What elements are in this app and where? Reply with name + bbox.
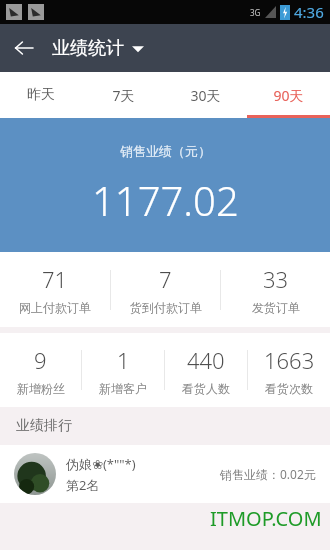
staticText: 网上付款订单 [19,300,91,315]
button[interactable]: 伪娘❀(*""*) [0,445,330,503]
staticText: 90天 [273,86,304,105]
button[interactable]: 7 [111,252,220,327]
button[interactable]: 1663 [248,333,330,407]
button[interactable]: 71 [0,252,110,327]
staticText: 货到付款订单 [130,300,202,315]
staticText: 30天 [190,86,221,105]
staticText: 33 [263,264,289,294]
staticText: 业绩排行 [16,417,72,435]
staticText: 新增粉丝 [17,381,65,395]
staticText: 销售业绩（元） [120,143,211,159]
staticText: 业绩统计 [52,37,124,60]
button[interactable]: 业绩统计 [48,37,148,60]
staticText: 7 [159,264,172,294]
staticText: 3G [250,7,261,18]
staticText: 9 [34,345,47,375]
button[interactable]: 昨天 [0,72,82,118]
button[interactable]: 90天 [247,72,330,118]
staticText: 4:36 [294,2,324,22]
staticText: 新增客户 [99,381,147,395]
button[interactable]: Back [0,24,48,72]
button[interactable]: 33 [221,252,330,327]
staticText: 看货次数 [265,381,313,395]
button[interactable]: 1 [82,333,164,407]
staticText: 昨天 [27,86,55,104]
staticText: 看货人数 [182,381,230,395]
staticText: 销售业绩：0.02元 [220,466,316,482]
button[interactable]: 7天 [82,72,164,118]
staticText: 1663 [264,345,315,375]
staticText: 伪娘❀(*""*) [66,455,136,473]
button[interactable]: 440 [165,333,247,407]
staticText: 71 [42,264,68,294]
staticText: ITMOP.COM [210,505,322,532]
staticText: 7天 [112,86,135,105]
staticText: 1177.02 [92,173,239,227]
staticText: 发货订单 [252,300,300,315]
button[interactable]: 30天 [164,72,247,118]
staticText: 1 [117,345,130,375]
staticText: 440 [187,345,225,375]
button[interactable]: 9 [0,333,81,407]
staticText: 第2名 [66,476,100,494]
